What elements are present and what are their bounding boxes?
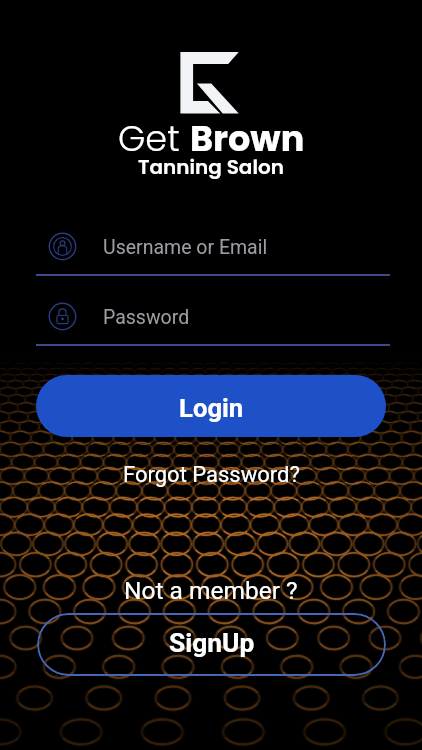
- button[interactable]: Forgot Password?: [113, 456, 310, 494]
- staticText: SignUp: [169, 628, 255, 659]
- button[interactable]: SignUp: [37, 613, 386, 676]
- staticText: Tanning Salon: [138, 153, 284, 181]
- staticText: Brown: [190, 114, 305, 163]
- staticText: Get: [118, 114, 190, 163]
- other: Get Brown logo: [180, 51, 240, 114]
- button[interactable]: Username or Email: [36, 226, 390, 277]
- staticText: Password: [103, 306, 190, 329]
- staticText: Forgot Password?: [123, 462, 300, 488]
- staticText: Not a member ?: [124, 576, 298, 605]
- button[interactable]: Password: [36, 296, 390, 347]
- staticText: Login: [179, 393, 244, 423]
- button[interactable]: Login: [36, 375, 386, 437]
- staticText: Username or Email: [103, 236, 268, 259]
